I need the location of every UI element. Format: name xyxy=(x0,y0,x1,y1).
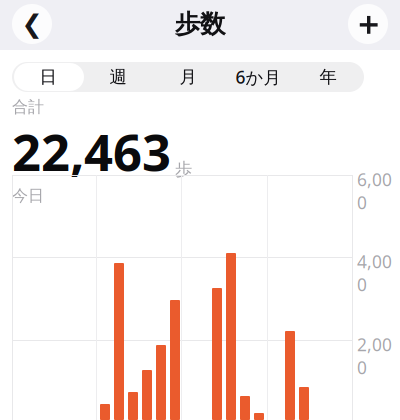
button[interactable]: データを追加 xyxy=(348,4,388,44)
staticText: 2,000 xyxy=(357,333,392,379)
button[interactable]: 月 xyxy=(153,62,223,92)
staticText: 4,000 xyxy=(357,250,392,296)
button[interactable]: 年 xyxy=(293,62,363,92)
button[interactable]: 週 xyxy=(83,62,153,92)
staticText: ❮ xyxy=(21,10,42,38)
staticText: 22,463 xyxy=(12,118,171,185)
staticText: 歩 xyxy=(175,159,192,180)
staticText: ＋ xyxy=(352,4,384,44)
staticText: 今日 xyxy=(12,186,44,206)
staticText: 年 xyxy=(319,66,336,88)
staticText: 歩数 xyxy=(175,8,225,39)
staticText: 日 xyxy=(39,66,56,88)
staticText: 合計 xyxy=(12,97,44,117)
button[interactable]: 戻る xyxy=(12,4,52,44)
button[interactable]: 6か月 xyxy=(223,62,293,92)
staticText: 週 xyxy=(109,66,126,88)
staticText: 6,000 xyxy=(357,168,392,214)
staticText: 月 xyxy=(179,66,196,88)
button[interactable]: 日 xyxy=(13,62,83,92)
staticText: 6か月 xyxy=(235,65,280,88)
